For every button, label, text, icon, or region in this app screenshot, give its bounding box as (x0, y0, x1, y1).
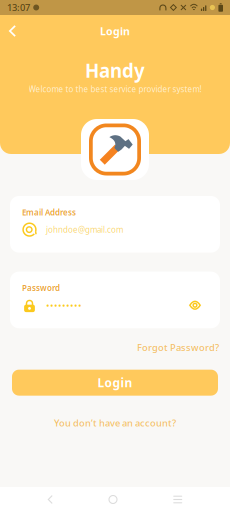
button[interactable]: You don’t have an account? (50, 413, 180, 433)
button[interactable]: Show password (189, 301, 201, 309)
button[interactable]: Login (12, 370, 218, 396)
staticText: You don’t have an account? (54, 417, 176, 429)
staticText: Login (97, 375, 132, 391)
staticText: Welcome to the best service provider sys… (28, 84, 201, 94)
staticText: johndoe@gmail.com (46, 224, 123, 235)
button[interactable]: Recent apps (165, 488, 190, 511)
button[interactable]: Home (100, 487, 125, 512)
staticText: Login (100, 24, 130, 38)
staticText: Password (22, 283, 60, 293)
staticText: 13:07 (7, 1, 30, 14)
staticText: Handy (85, 58, 145, 83)
staticText: Email Address (22, 207, 76, 218)
staticText: ••••••••• (46, 299, 82, 311)
staticText: Forgot Password? (137, 341, 219, 354)
button[interactable]: Forgot Password? (135, 339, 221, 356)
button[interactable]: Back (40, 487, 61, 512)
button[interactable]: Back (0, 19, 25, 43)
